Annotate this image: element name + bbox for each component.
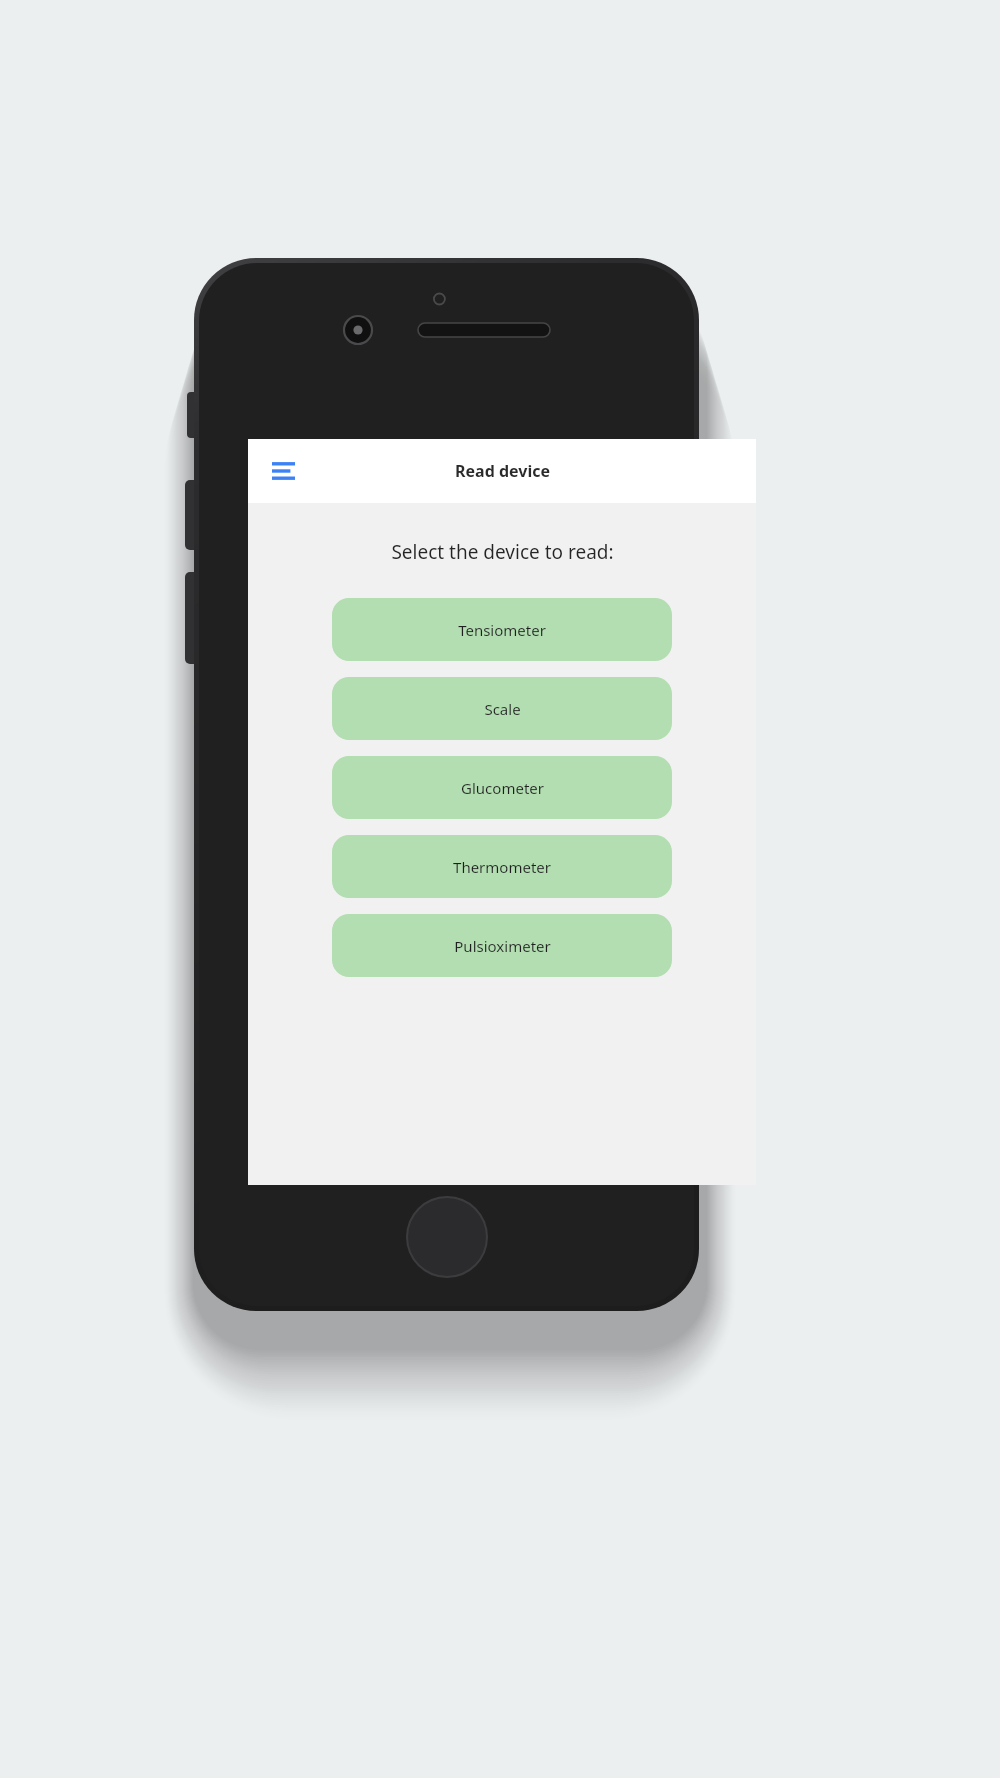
staticText: Tensiometer bbox=[458, 620, 546, 640]
staticText: Select the device to read: bbox=[391, 539, 614, 565]
staticText: Scale bbox=[484, 699, 521, 719]
button[interactable]: Pulsioximeter bbox=[332, 914, 672, 977]
staticText: Glucometer bbox=[461, 778, 544, 798]
button[interactable]: Open navigation menu bbox=[260, 448, 306, 494]
staticText: Thermometer bbox=[453, 857, 551, 877]
staticText: Read device bbox=[455, 460, 550, 482]
button[interactable]: Thermometer bbox=[332, 835, 672, 898]
button[interactable]: Tensiometer bbox=[332, 598, 672, 661]
button[interactable]: Scale bbox=[332, 677, 672, 740]
staticText: Pulsioximeter bbox=[454, 936, 551, 956]
button[interactable]: Glucometer bbox=[332, 756, 672, 819]
